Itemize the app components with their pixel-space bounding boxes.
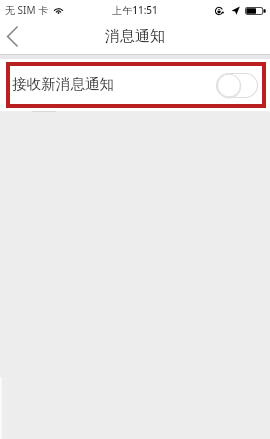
staticText: 上午11:51 (112, 3, 158, 17)
staticText: 消息通知 (105, 27, 165, 46)
staticText: 无 SIM 卡 (5, 3, 49, 17)
button[interactable]: Toggle receive new message notifications (216, 73, 258, 98)
button[interactable]: Back (0, 21, 27, 51)
button[interactable]: 接收新消息通知 (0, 59, 270, 111)
staticText: 接收新消息通知 (12, 75, 115, 93)
